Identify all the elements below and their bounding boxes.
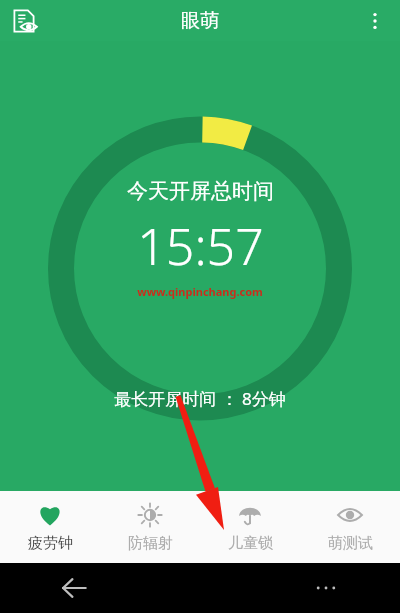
staticText: 眼萌 [181, 9, 219, 33]
button[interactable]: Back [52, 566, 96, 610]
button[interactable]: 萌测试 [300, 491, 400, 563]
staticText: 萌测试 [328, 534, 373, 553]
staticText: 最长开屏时间 ： 8分钟 [114, 387, 286, 410]
staticText: 儿童锁 [228, 534, 273, 553]
staticText: 今天开屏总时间 [127, 178, 274, 204]
button[interactable]: 疲劳钟 [0, 491, 100, 563]
staticText: 防辐射 [128, 534, 173, 553]
button[interactable]: Recent apps [304, 566, 348, 610]
staticText: www.qinpinchang.com [137, 284, 263, 299]
button[interactable]: 防辐射 [100, 491, 200, 563]
button[interactable]: More options [358, 4, 392, 38]
button[interactable]: Report [6, 3, 42, 39]
staticText: 疲劳钟 [28, 534, 73, 553]
staticText: 15:57 [137, 212, 264, 280]
button[interactable]: 儿童锁 [200, 491, 300, 563]
